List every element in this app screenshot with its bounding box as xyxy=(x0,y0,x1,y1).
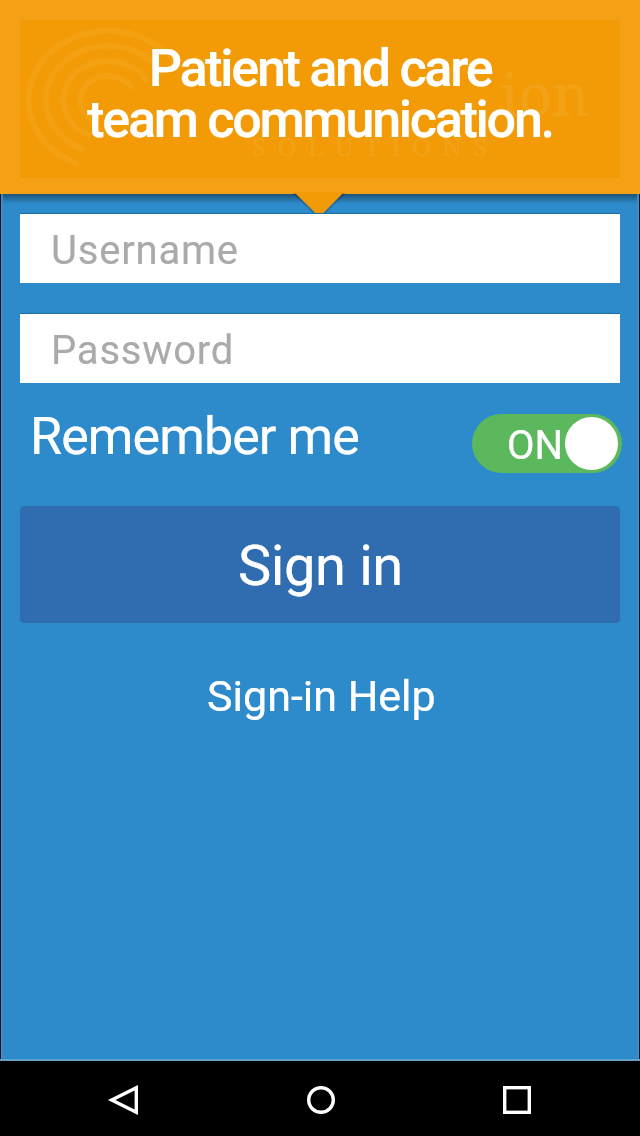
staticText: Sign in xyxy=(238,533,403,599)
staticText: Remember me xyxy=(30,406,359,467)
button[interactable]: Home xyxy=(273,1061,369,1136)
staticText: Sign-in Help xyxy=(207,671,436,721)
staticText: Username xyxy=(51,227,239,274)
button[interactable]: Password xyxy=(20,314,620,383)
button[interactable]: Sign in xyxy=(20,506,620,623)
button[interactable]: Sign-in Help xyxy=(196,666,446,726)
button[interactable]: Username xyxy=(20,214,620,283)
button[interactable]: Back xyxy=(76,1061,172,1136)
button[interactable]: Recent apps xyxy=(469,1061,565,1136)
staticText: ON xyxy=(507,422,564,469)
button[interactable]: Remember me on xyxy=(472,414,622,473)
staticText: Password xyxy=(51,327,235,374)
staticText: SOLUTIONS xyxy=(252,128,499,163)
staticText: ion xyxy=(500,54,590,133)
staticText: Patient and care team communication. xyxy=(0,38,640,150)
button[interactable]: Remember me xyxy=(20,410,620,476)
